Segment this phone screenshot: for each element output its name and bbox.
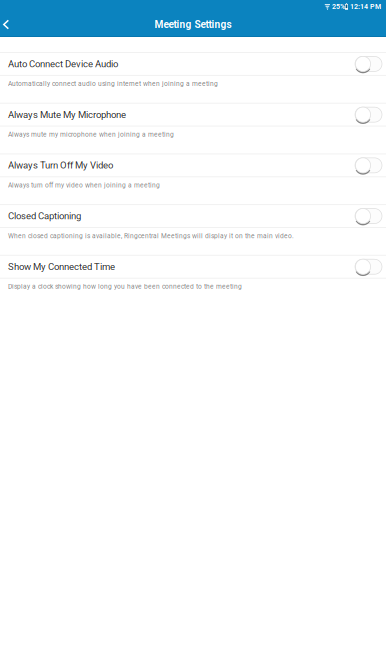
staticText: Auto Connect Device Audio <box>8 58 118 70</box>
staticText: Always Mute My Microphone <box>8 109 126 120</box>
button[interactable]: Always Turn Off My Video <box>0 154 386 176</box>
staticText: 25% <box>330 2 345 11</box>
staticText: When closed captioning is available, Rin… <box>8 232 294 240</box>
button[interactable]: Auto Connect Device Audio <box>0 53 386 75</box>
staticText: Always mute my microphone when joining a… <box>8 131 174 138</box>
button[interactable]: Closed Captioning <box>0 205 386 227</box>
button[interactable]: Always Mute My Microphone <box>0 104 386 126</box>
staticText: Show My Connected Time <box>8 261 115 272</box>
button[interactable]: Back <box>0 12 17 36</box>
staticText: Always Turn Off My Video <box>8 160 113 171</box>
staticText: Always turn off my video when joining a … <box>8 181 160 189</box>
staticText: Meeting Settings <box>154 19 231 30</box>
staticText: 12:14 PM <box>348 2 381 11</box>
staticText: Closed Captioning <box>8 210 81 222</box>
staticText: Display a clock showing how long you hav… <box>8 283 242 290</box>
button[interactable]: Show My Connected Time <box>0 256 386 278</box>
staticText: Automatically connect audio using intern… <box>8 80 218 88</box>
